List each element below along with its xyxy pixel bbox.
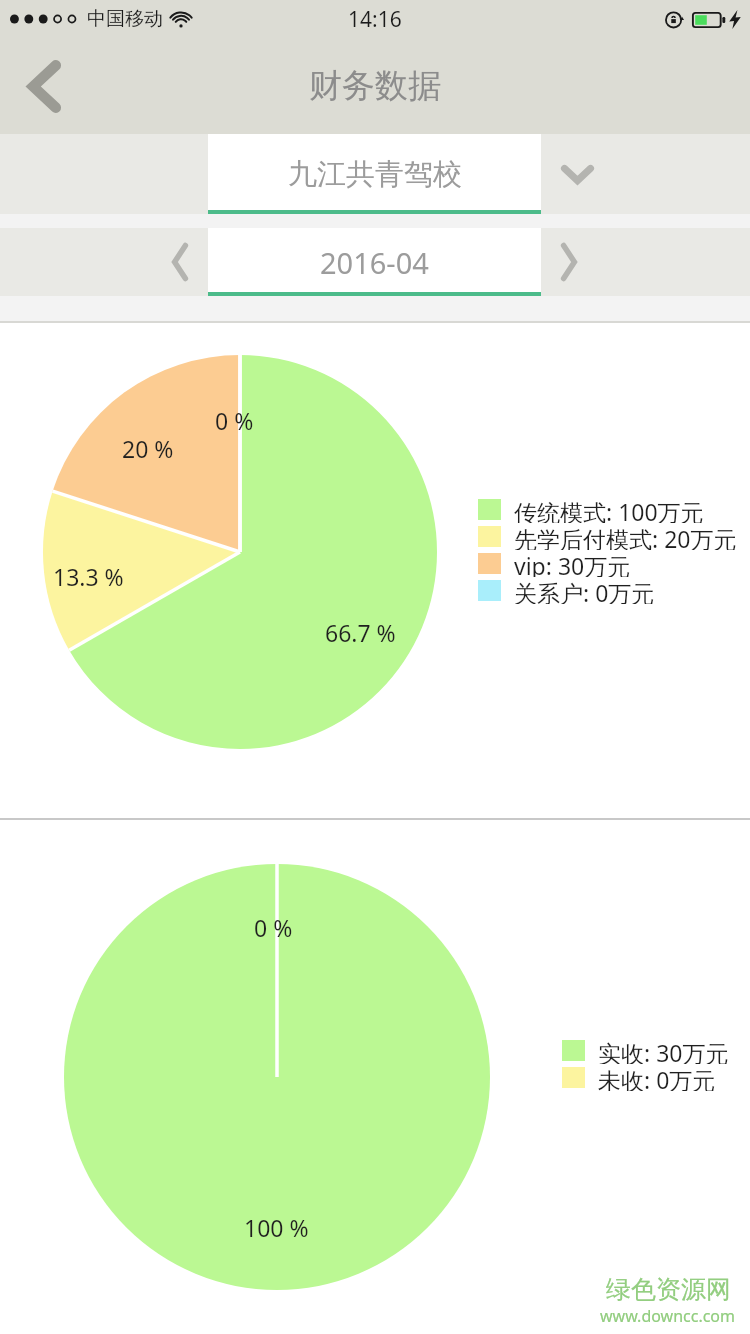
staticText: 绿色资源网: [606, 1274, 731, 1305]
button[interactable]: Expand school list: [541, 134, 613, 214]
button[interactable]: 九江共青驾校: [208, 134, 541, 214]
staticText: 九江共青驾校: [288, 156, 462, 193]
button[interactable]: Next month: [541, 228, 597, 296]
button[interactable]: 传统模式: 100万元: [478, 496, 704, 523]
staticText: 财务数据: [309, 65, 441, 107]
button[interactable]: 2016-04: [208, 228, 541, 296]
staticText: vip: 30万元: [514, 550, 631, 577]
button[interactable]: 先学后付模式: 20万元: [478, 523, 737, 550]
button[interactable]: Previous month: [152, 228, 208, 296]
staticText: 0 %: [215, 405, 254, 436]
staticText: 0 %: [254, 912, 293, 943]
staticText: 2016-04: [320, 243, 429, 282]
staticText: 关系户: 0万元: [514, 577, 655, 604]
staticText: 13.3 %: [53, 561, 124, 592]
staticText: 66.7 %: [325, 617, 396, 648]
button[interactable]: Back: [0, 38, 88, 134]
staticText: 14:16: [348, 5, 402, 34]
staticText: 20 %: [122, 433, 174, 464]
button[interactable]: vip: 30万元: [478, 550, 631, 577]
staticText: www.downcc.com: [600, 1305, 736, 1327]
button[interactable]: 关系户: 0万元: [478, 577, 655, 604]
staticText: 中国移动: [87, 7, 163, 31]
staticText: 传统模式: 100万元: [514, 496, 704, 523]
staticText: 实收: 30万元: [598, 1037, 729, 1064]
button[interactable]: 实收: 30万元: [562, 1037, 729, 1064]
button[interactable]: 未收: 0万元: [562, 1064, 716, 1091]
staticText: 先学后付模式: 20万元: [514, 523, 737, 550]
staticText: 未收: 0万元: [598, 1064, 716, 1091]
staticText: 100 %: [244, 1212, 309, 1243]
